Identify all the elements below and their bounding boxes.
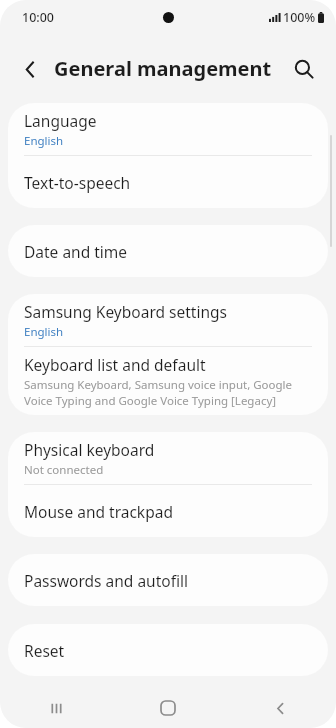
staticText: English — [24, 324, 64, 340]
button[interactable]: Search — [284, 49, 324, 89]
staticText: General management — [54, 55, 284, 82]
button[interactable]: Samsung Keyboard settings — [8, 294, 328, 347]
staticText: 100% — [283, 9, 316, 26]
staticText: Not connected — [24, 462, 104, 478]
staticText: Samsung Keyboard, Samsung voice input, G… — [24, 377, 312, 408]
staticText: Language — [24, 110, 97, 131]
button[interactable]: Keyboard list and default — [8, 347, 328, 415]
button[interactable]: Physical keyboard — [8, 432, 328, 485]
staticText: Passwords and autofill — [24, 570, 188, 591]
staticText: English — [24, 133, 64, 149]
button[interactable]: Mouse and trackpad — [8, 485, 328, 537]
button[interactable]: Text-to-speech — [8, 156, 328, 208]
button[interactable]: Date and time — [8, 225, 328, 277]
staticText: Reset — [24, 640, 65, 661]
staticText: Keyboard list and default — [24, 354, 206, 375]
button[interactable]: Reset — [8, 624, 328, 676]
staticText: Text-to-speech — [24, 172, 131, 193]
button[interactable]: Recents — [0, 688, 112, 728]
button[interactable]: Home — [112, 688, 224, 728]
staticText: Physical keyboard — [24, 439, 155, 460]
button[interactable]: Back — [10, 49, 50, 89]
button[interactable]: Language — [8, 103, 328, 156]
staticText: Date and time — [24, 241, 128, 262]
staticText: 10:00 — [22, 9, 55, 26]
button[interactable]: Back — [224, 688, 336, 728]
staticText: Mouse and trackpad — [24, 501, 173, 522]
button[interactable]: Passwords and autofill — [8, 554, 328, 606]
staticText: Samsung Keyboard settings — [24, 301, 227, 322]
